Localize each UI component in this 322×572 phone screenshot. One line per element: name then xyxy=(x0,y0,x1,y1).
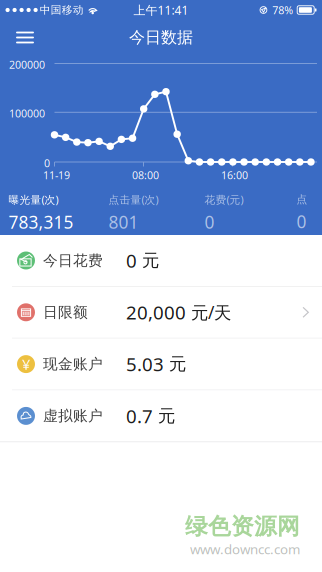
staticText: 日限额 xyxy=(43,303,88,321)
staticText: 点击量(次) xyxy=(108,192,158,207)
button[interactable]: ¥ xyxy=(0,339,322,390)
staticText: 08:00 xyxy=(132,168,159,182)
staticText: 0 xyxy=(204,211,214,234)
staticText: 100000 xyxy=(9,106,45,120)
staticText: 0 xyxy=(44,156,50,170)
staticText: 曝光量(次) xyxy=(8,192,58,207)
staticText: 今日花费 xyxy=(43,251,103,269)
staticText: 20,000 xyxy=(126,300,186,325)
staticText: 78% xyxy=(272,3,293,17)
staticText: 虚拟账户 xyxy=(43,407,103,425)
staticText: 绿色资源网 xyxy=(185,512,300,540)
button[interactable]: Menu xyxy=(0,20,50,55)
button[interactable]: 今日花费 xyxy=(0,235,322,286)
staticText: 上午11:41 xyxy=(133,2,188,18)
staticText: 0 xyxy=(296,210,306,233)
staticText: 16:00 xyxy=(221,168,248,182)
staticText: 200000 xyxy=(9,57,45,72)
staticText: 0.7 xyxy=(126,403,153,428)
staticText: 5.03 xyxy=(126,352,164,376)
button[interactable]: 日限额 xyxy=(0,287,322,338)
staticText: 中国移动 xyxy=(40,3,84,16)
staticText: 783,315 xyxy=(8,211,73,234)
staticText: 801 xyxy=(108,211,138,234)
staticText: 0 xyxy=(126,248,137,273)
staticText: 现金账户 xyxy=(43,355,103,373)
staticText: 元 xyxy=(142,250,159,271)
staticText: 元 xyxy=(158,405,175,427)
button[interactable]: 虚拟账户 xyxy=(0,390,322,441)
staticText: 今日数据 xyxy=(129,28,193,47)
staticText: 11-19 xyxy=(43,168,70,182)
staticText: www.downcc.com xyxy=(190,540,300,558)
staticText: ¥ xyxy=(22,354,30,374)
staticText: 元 xyxy=(169,353,186,375)
staticText: 点 xyxy=(296,193,307,206)
staticText: 花费(元) xyxy=(204,192,243,207)
staticText: 元/天 xyxy=(191,301,231,324)
